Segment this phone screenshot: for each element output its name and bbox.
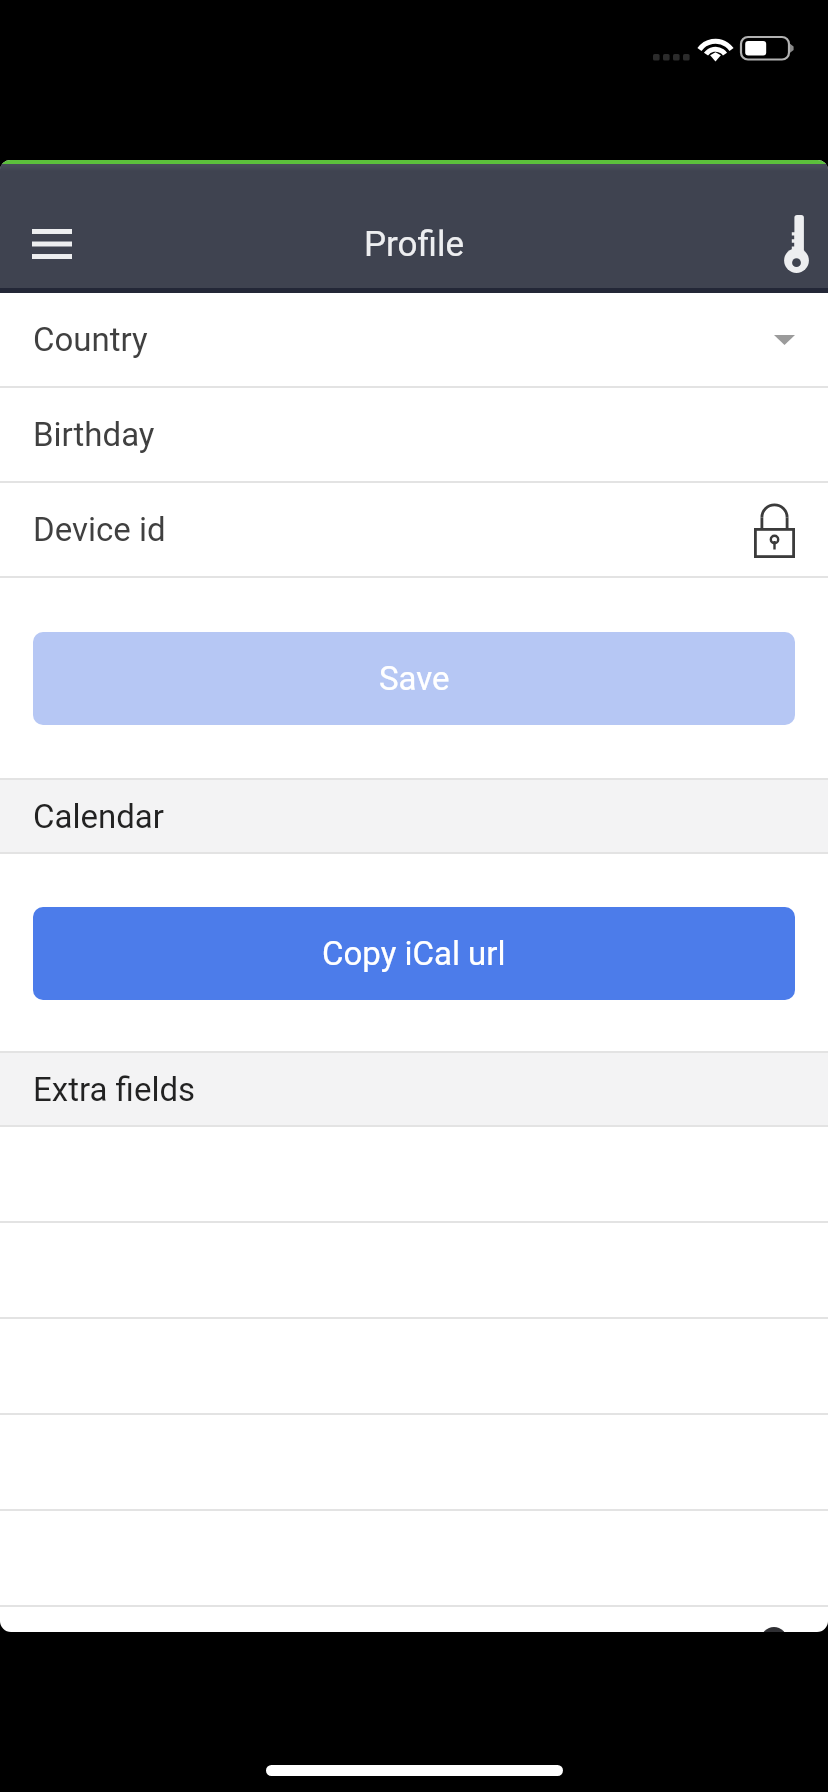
button[interactable]: Save bbox=[33, 632, 795, 725]
staticText: Birthday bbox=[33, 415, 155, 454]
staticText: Profile bbox=[364, 224, 465, 265]
button[interactable]: Device id bbox=[0, 483, 828, 576]
staticText: Extra fields bbox=[33, 1070, 196, 1109]
staticText: Country bbox=[33, 320, 148, 359]
button[interactable]: Menu bbox=[6, 199, 98, 289]
button[interactable]: Password bbox=[757, 199, 828, 289]
staticText: Copy iCal url bbox=[322, 934, 506, 973]
staticText: Device id bbox=[33, 510, 166, 549]
button[interactable] bbox=[0, 1607, 828, 1632]
staticText: Calendar bbox=[33, 797, 164, 836]
button[interactable]: Add bbox=[718, 1606, 828, 1632]
staticText: Save bbox=[379, 659, 450, 698]
button[interactable]: Birthday bbox=[0, 388, 828, 481]
button[interactable]: Country bbox=[0, 293, 828, 386]
button[interactable]: Copy iCal url bbox=[33, 907, 795, 1000]
